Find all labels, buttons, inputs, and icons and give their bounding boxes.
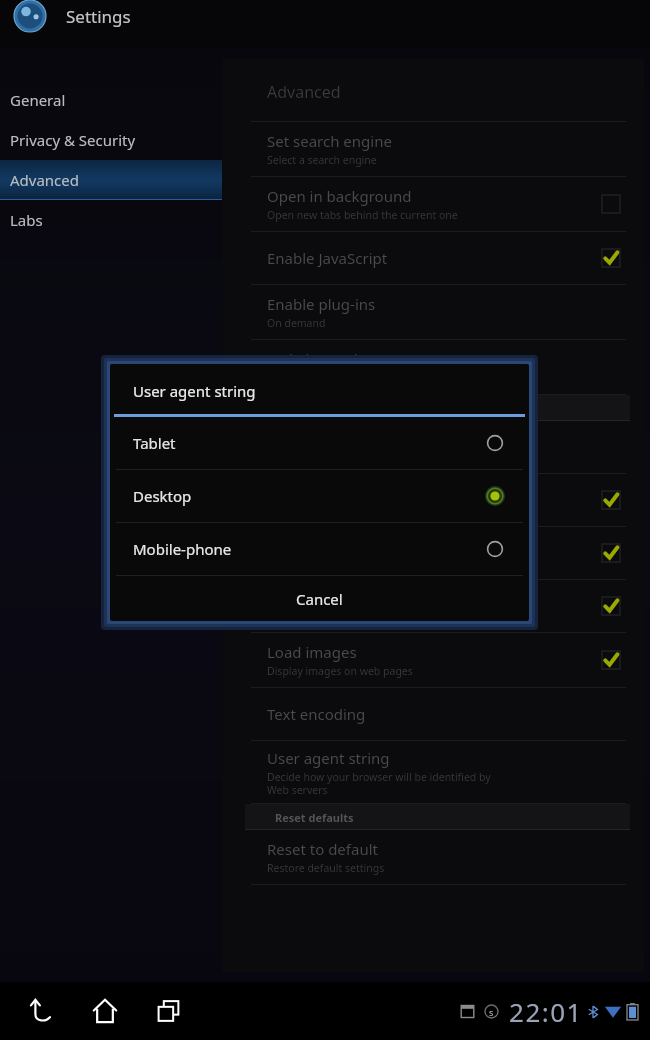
staticText: Display images on web pages	[267, 664, 413, 678]
staticText: Decide how your browser will be identifi…	[267, 770, 491, 797]
staticText: Block pop-up windows	[267, 596, 426, 616]
staticText: Desktop	[133, 486, 485, 506]
staticText: On demand	[267, 316, 326, 330]
button[interactable]	[223, 421, 644, 474]
staticText: Select a search engine	[267, 153, 377, 167]
button[interactable]: User agent string	[223, 741, 644, 804]
button[interactable]: Reset to default	[223, 830, 644, 885]
staticText: Set search engine	[267, 131, 392, 151]
button[interactable]	[223, 527, 644, 580]
staticText: Enable JavaScript	[267, 248, 388, 268]
button[interactable]: Home	[78, 984, 132, 1038]
button[interactable]	[223, 474, 644, 527]
staticText: Load images	[267, 642, 357, 662]
staticText: User agent string	[133, 381, 256, 401]
button[interactable]: Website settings	[223, 340, 644, 395]
staticText: Reset defaults	[275, 810, 354, 825]
staticText: Advanced	[10, 170, 80, 190]
staticText: Privacy & Security	[10, 130, 136, 150]
button[interactable]: Tablet	[110, 417, 529, 470]
staticText: Cancel	[296, 589, 343, 609]
button[interactable]: Enable plug-ins	[223, 285, 644, 340]
staticText: Website settings	[267, 349, 384, 369]
staticText: Open in background	[267, 186, 412, 206]
button[interactable]: Open in background	[223, 177, 644, 232]
button[interactable]: Back	[14, 984, 68, 1038]
staticText: Text encoding	[267, 704, 366, 724]
staticText: 22:01	[509, 994, 583, 1029]
button[interactable]: General	[0, 80, 222, 120]
button[interactable]: Block pop-up windows	[223, 580, 644, 633]
staticText: Advanced	[267, 81, 341, 103]
staticText: Restore default settings	[267, 861, 385, 875]
button[interactable]: Privacy & Security	[0, 120, 222, 160]
button[interactable]: Desktop	[110, 470, 529, 523]
staticText: Mobile-phone	[133, 539, 485, 559]
staticText: Reset to default	[267, 839, 378, 859]
button[interactable]: Load images	[223, 633, 644, 688]
staticText: Labs	[10, 210, 43, 230]
staticText: Tablet	[133, 433, 485, 453]
button[interactable]: Labs	[0, 200, 222, 240]
button[interactable]: Set search engine	[223, 122, 644, 177]
button[interactable]: Recent apps	[142, 984, 196, 1038]
button[interactable]: Enable JavaScript	[223, 232, 644, 285]
button[interactable]: Mobile-phone	[110, 523, 529, 576]
staticText: Open new tabs behind the current one	[267, 208, 458, 222]
staticText: General	[10, 90, 66, 110]
button[interactable]: Cancel	[110, 576, 529, 621]
button[interactable]: Text encoding	[223, 688, 644, 741]
staticText: s	[489, 1006, 494, 1018]
staticText: Settings	[66, 5, 131, 28]
staticText: User agent string	[267, 748, 390, 768]
button[interactable]: Advanced	[0, 160, 222, 200]
staticText: Enable plug-ins	[267, 294, 376, 314]
